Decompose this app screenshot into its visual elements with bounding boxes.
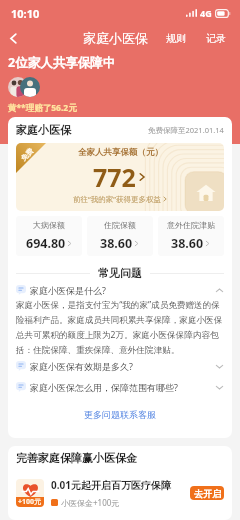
staticText: 常见问题 [98,266,142,280]
staticText: 0.01元起开启百万医疗保障 [51,478,171,492]
staticText: 去开启 [194,488,221,499]
staticText: 家庭小医保是什么? [30,284,106,296]
staticText: 免费保障至2021.01.14 [148,125,224,135]
button[interactable]: Back [0,26,26,50]
button[interactable]: 家庭小医保是什么? [16,281,224,299]
staticText: 10:10 [11,6,40,21]
staticText: 规则 [166,32,186,45]
button[interactable]: 大病保额 [16,216,82,256]
staticText: 意外住院津贴 [167,220,215,230]
button[interactable]: 记录 [200,28,234,49]
button[interactable]: 更多问题联系客服 [81,406,159,423]
staticText: 38.60 [171,235,204,252]
staticText: 全家人共享保额（元） [78,147,163,158]
staticText: 家庭小医保 [83,30,148,46]
staticText: 家庭小医保怎么用，保障范围有哪些? [30,381,178,393]
staticText: 772 [93,160,136,194]
staticText: 家庭小医保有效期是多久? [30,360,133,372]
staticText: 前往“我的家”获得更多权益 [73,194,161,204]
staticText: 大病保额 [33,220,65,230]
staticText: 完善家庭保障赢小医保金 [16,451,137,465]
staticText: 694.80 [26,235,66,252]
staticText: +100元 [18,497,42,507]
staticText: 更多问题联系客服 [84,409,156,420]
button[interactable]: 去开启 [190,486,224,500]
staticText: 家庭小医保，是指支付宝为“我的家”成员免费赠送的保险福利产品。家庭成员共同积累共… [16,299,224,355]
button[interactable]: 家庭小医保怎么用，保障范围有哪些? [16,377,224,397]
staticText: 家庭小医保 [16,123,71,137]
button[interactable]: 家庭小医保有效期是多久? [16,356,224,376]
staticText: 记录 [206,32,226,45]
staticText: 4G [200,7,212,19]
button[interactable]: +100元 [16,478,224,508]
staticText: 免费 [19,146,35,163]
staticText: 住院保额 [104,220,136,230]
button[interactable]: 意外住院津贴 [158,216,224,256]
staticText: 黄**理赔了56.2元 [8,102,77,114]
button[interactable]: 住院保额 [87,216,153,256]
staticText: 2位家人共享保障中 [8,54,116,71]
staticText: 38.60 [100,235,133,252]
staticText: 小医保金+100元 [61,497,120,508]
button[interactable]: 规则 [160,28,192,49]
